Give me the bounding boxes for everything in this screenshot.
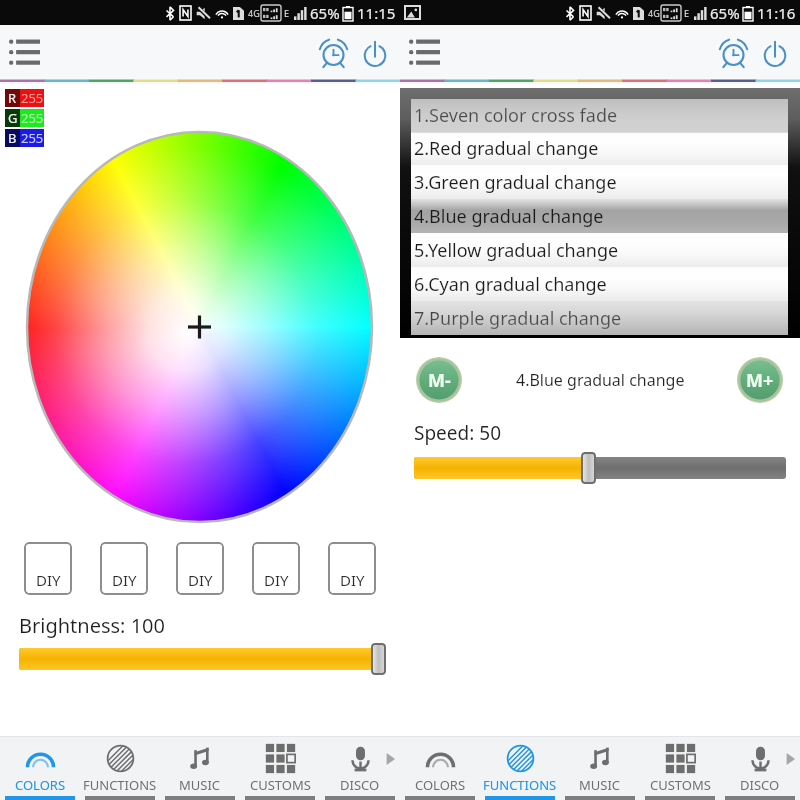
staticText: M-	[428, 368, 451, 393]
staticText: 4.Blue gradual change	[516, 369, 685, 391]
staticText: 65%	[310, 3, 340, 23]
button[interactable]: DIY	[100, 542, 148, 595]
button[interactable]: MUSIC	[560, 736, 640, 800]
staticText: Speed: 50	[414, 420, 502, 446]
button[interactable]: COLORS	[400, 736, 480, 800]
staticText: 3.Green gradual change	[414, 170, 617, 195]
other: More	[384, 751, 397, 767]
staticText: CUSTOMS	[650, 776, 711, 794]
button[interactable]: CUSTOMS	[240, 736, 320, 800]
staticText: COLORS	[15, 776, 66, 794]
staticText: FUNCTIONS	[483, 776, 557, 794]
staticText: 1.Seven color cross fade	[414, 103, 618, 128]
button[interactable]: Menu	[1, 29, 47, 75]
button[interactable]: M+	[736, 357, 784, 403]
staticText: E	[684, 7, 690, 19]
button[interactable]: Timer	[312, 31, 354, 73]
staticText: M+	[746, 368, 774, 393]
staticText: DIY	[112, 570, 137, 590]
other: More	[784, 751, 797, 767]
staticText: 255	[21, 129, 44, 147]
button[interactable]: DISCO	[720, 736, 800, 800]
staticText: MUSIC	[179, 776, 221, 794]
button[interactable]: 1.Seven color cross fade	[411, 99, 788, 132]
button[interactable]: DISCO	[320, 736, 400, 800]
staticText: DIY	[36, 570, 61, 590]
button[interactable]: 6.Cyan gradual change	[411, 267, 788, 301]
button[interactable]: DIY	[252, 542, 300, 595]
staticText: FUNCTIONS	[83, 776, 157, 794]
staticText: B	[8, 129, 17, 147]
button[interactable]: Menu	[401, 29, 447, 75]
staticText: E	[284, 7, 290, 19]
button[interactable]: MUSIC	[160, 736, 240, 800]
staticText: MUSIC	[579, 776, 621, 794]
staticText: 4G	[248, 7, 260, 19]
button[interactable]: DIY	[328, 542, 376, 595]
button[interactable]	[19, 643, 386, 675]
staticText: DIY	[340, 570, 365, 590]
staticText: 4.Blue gradual change	[414, 204, 604, 229]
button[interactable]: 5.Yellow gradual change	[411, 233, 788, 267]
staticText: DISCO	[740, 776, 780, 794]
button[interactable]: DIY	[24, 542, 72, 595]
button[interactable]: 4.Blue gradual change	[411, 199, 788, 233]
staticText: 255	[21, 89, 44, 107]
staticText: DIY	[264, 570, 289, 590]
staticText: 11:16	[757, 3, 796, 23]
staticText: 7.Purple gradual change	[414, 306, 622, 331]
staticText: DISCO	[340, 776, 380, 794]
staticText: 65%	[710, 3, 740, 23]
staticText: G	[8, 109, 18, 127]
staticText: 11:15	[357, 3, 396, 23]
button[interactable]: 3.Green gradual change	[411, 165, 788, 199]
button[interactable]: Power	[354, 31, 396, 73]
staticText: DIY	[188, 570, 213, 590]
staticText: 4G	[648, 7, 660, 19]
button[interactable]: CUSTOMS	[640, 736, 720, 800]
button[interactable]: Power	[754, 31, 796, 73]
staticText: 2.Red gradual change	[414, 136, 599, 161]
button[interactable]: DIY	[176, 542, 224, 595]
staticText: Brightness: 100	[19, 612, 165, 639]
staticText: R	[8, 89, 17, 107]
staticText: 5.Yellow gradual change	[414, 238, 619, 263]
staticText: CUSTOMS	[250, 776, 311, 794]
staticText: COLORS	[415, 776, 466, 794]
button[interactable]: 7.Purple gradual change	[411, 301, 788, 335]
button[interactable]	[414, 452, 786, 484]
button[interactable]: COLORS	[0, 736, 80, 800]
button[interactable]: FUNCTIONS	[480, 736, 560, 800]
button[interactable]: Timer	[712, 31, 754, 73]
button[interactable]: M-	[415, 357, 463, 403]
staticText: 6.Cyan gradual change	[414, 272, 607, 297]
button[interactable]: 2.Red gradual change	[411, 132, 788, 165]
button[interactable]: FUNCTIONS	[80, 736, 160, 800]
staticText: 255	[21, 109, 44, 127]
